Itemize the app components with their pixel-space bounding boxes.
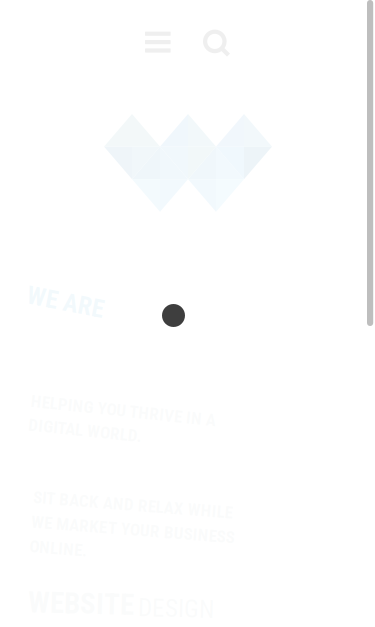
staticText: WE ARE bbox=[30, 280, 108, 310]
button[interactable]: Search bbox=[203, 30, 231, 58]
button[interactable]: Menu bbox=[145, 32, 171, 53]
